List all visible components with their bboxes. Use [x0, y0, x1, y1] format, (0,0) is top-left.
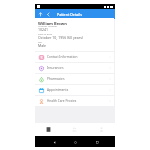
button[interactable]: Back: [51, 139, 57, 145]
staticText: 10241: [38, 27, 49, 32]
button[interactable]: Pharmacies: [35, 74, 114, 84]
button[interactable]: Appointments: [35, 85, 114, 95]
staticText: Appointments: [47, 88, 69, 92]
button[interactable]: Records: [35, 123, 61, 136]
staticText: Patient Details: [57, 12, 83, 17]
staticText: Insurances: [47, 66, 64, 70]
button[interactable]: Home: [72, 139, 78, 145]
staticText: Contact Information: [47, 55, 78, 59]
staticText: Health Care Proxies: [47, 99, 77, 103]
button[interactable]: Recents: [94, 139, 100, 145]
staticText: Account Number: [38, 24, 58, 27]
button[interactable]: Contact Information: [35, 52, 114, 62]
button[interactable]: Navigate up: [37, 11, 44, 18]
staticText: Sex: [38, 40, 42, 43]
button[interactable]: Back: [45, 11, 52, 18]
button[interactable]: Insurances: [35, 63, 114, 73]
button[interactable]: Health Care Proxies: [35, 96, 114, 106]
staticText: Date of Birth: [38, 32, 53, 35]
staticText: October 10, 1956 (60 years): [38, 35, 83, 40]
staticText: Pharmacies: [47, 77, 65, 81]
staticText: Male: [38, 43, 47, 48]
staticText: William Brown: [38, 21, 67, 26]
